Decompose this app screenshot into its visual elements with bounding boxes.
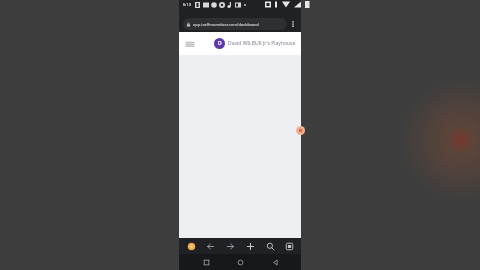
staticText: D — [218, 40, 222, 47]
staticText: 6:13 — [183, 2, 191, 7]
button[interactable]: Back — [202, 238, 218, 254]
button[interactable]: Home — [183, 238, 199, 254]
button[interactable]: Tabs — [281, 238, 297, 254]
button[interactable]: Back — [267, 254, 283, 270]
button[interactable]: Recent apps — [198, 254, 214, 270]
button[interactable]: More options — [287, 18, 299, 30]
button[interactable]: Menu — [184, 38, 196, 50]
button[interactable]: app.traffmonetizer.com/dashboard — [183, 18, 287, 30]
button[interactable]: Floating assistant — [296, 126, 305, 135]
button[interactable]: Forward — [222, 238, 238, 254]
button[interactable]: New tab — [242, 238, 258, 254]
staticText: app.traffmonetizer.com/dashboard — [193, 22, 259, 27]
button[interactable]: Home — [232, 254, 248, 270]
button[interactable]: Search — [262, 238, 278, 254]
staticText: David WILBUR Jr's Playhouse — [228, 40, 296, 47]
button[interactable]: D — [214, 38, 301, 49]
